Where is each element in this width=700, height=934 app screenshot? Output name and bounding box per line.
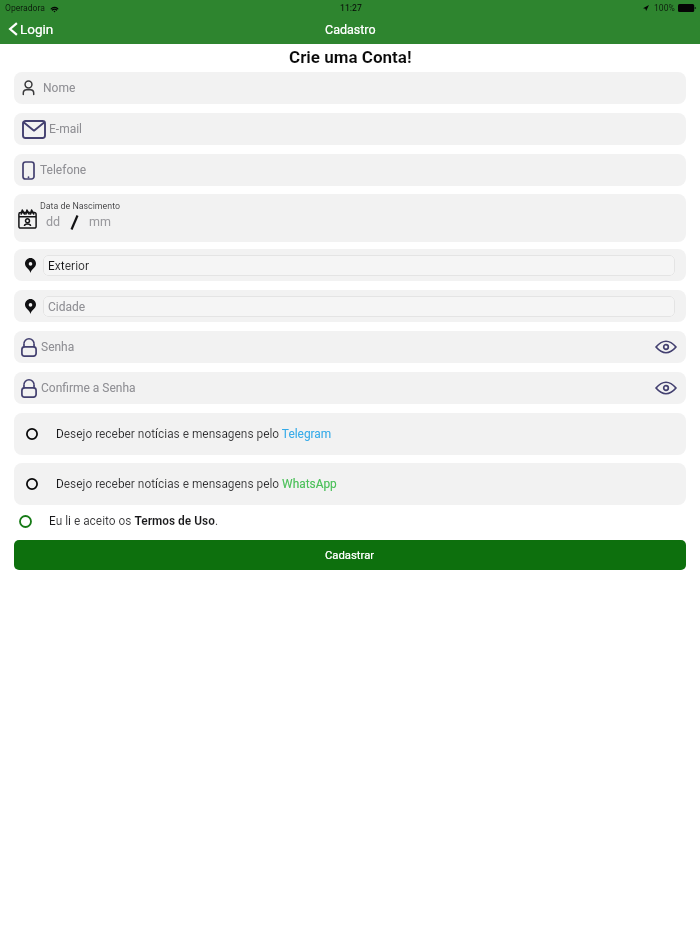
staticText: E-mail [49,122,83,136]
button[interactable]: E-mail [14,113,686,145]
staticText: Cadastrar [325,549,375,562]
staticText: Login [20,21,54,37]
button[interactable]: Telefone [14,154,686,186]
staticText: Telefone [40,163,87,177]
button[interactable]: Data de Nascimento [14,194,686,242]
staticText: 100% [654,3,675,13]
button[interactable]: Exterior [14,249,686,281]
button[interactable]: Nome [14,72,686,104]
staticText: Exterior [48,259,89,273]
staticText: dd [46,214,61,229]
staticText: Crie uma Conta! [289,47,412,67]
staticText: Cadastro [325,22,376,37]
staticText: mm [89,214,111,229]
staticText: Operadora [5,3,45,13]
button[interactable]: Confirme a Senha [14,372,686,404]
staticText: Eu li e aceito os Termos de Uso. [49,514,219,528]
staticText: 11:27 [340,3,362,13]
button[interactable]: Eu li e aceito os Termos de Uso. [0,509,700,533]
button[interactable]: Desejo receber notícias e mensagens pelo… [14,413,686,455]
staticText: Desejo receber notícias e mensagens pelo… [56,427,332,441]
button[interactable]: Login [0,18,62,40]
staticText: Cidade [48,300,86,314]
staticText: Nome [43,81,76,95]
button[interactable]: Senha [14,331,686,363]
button[interactable]: Mostrar senha [655,381,677,395]
staticText: Senha [41,340,75,354]
staticText: Desejo receber notícias e mensagens pelo… [56,477,337,491]
button[interactable]: Cadastrar [14,540,686,570]
staticText: Confirme a Senha [41,381,136,395]
button[interactable]: Cidade [14,290,686,322]
staticText: Data de Nascimento [40,201,121,211]
button[interactable]: Desejo receber notícias e mensagens pelo… [14,463,686,505]
button[interactable]: Mostrar senha [655,340,677,354]
